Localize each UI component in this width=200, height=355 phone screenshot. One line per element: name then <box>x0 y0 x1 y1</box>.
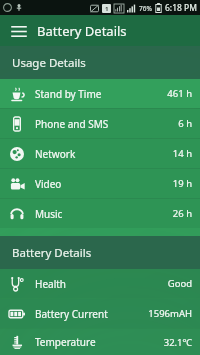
button[interactable]: Video <box>0 169 200 198</box>
staticText: 6:18 PM <box>165 2 197 14</box>
staticText: Stand by Time <box>35 87 102 101</box>
staticText: Battery Current <box>35 307 108 321</box>
staticText: Usage Details <box>12 55 86 71</box>
staticText: Health <box>35 277 67 291</box>
button[interactable]: Stand by Time <box>0 79 200 108</box>
staticText: 32.1℃ <box>163 336 192 349</box>
staticText: Video <box>35 177 62 191</box>
staticText: 461 h <box>167 87 192 100</box>
button[interactable]: Health <box>0 269 200 298</box>
staticText: 26 h <box>172 207 192 220</box>
button[interactable]: Phone and SMS <box>0 109 200 138</box>
staticText: 19 h <box>172 177 192 190</box>
staticText: Phone and SMS <box>35 117 109 131</box>
staticText: Music <box>35 207 63 221</box>
staticText: Good <box>167 277 192 290</box>
staticText: 1 <box>105 5 109 13</box>
staticText: 6 h <box>178 117 192 130</box>
staticText: 1596mAH <box>148 307 192 320</box>
button[interactable]: Temperature <box>0 329 200 355</box>
button[interactable]: Network <box>0 139 200 168</box>
button[interactable]: Battery Current <box>0 299 200 328</box>
staticText: Temperature <box>35 335 96 349</box>
staticText: 14 h <box>172 147 192 160</box>
staticText: Network <box>35 147 76 161</box>
button[interactable]: Music <box>0 199 200 228</box>
staticText: Battery Details <box>37 22 127 40</box>
button[interactable]: Open navigation menu <box>6 18 32 44</box>
staticText: Battery Details <box>12 245 92 261</box>
staticText: 76% <box>139 4 152 13</box>
